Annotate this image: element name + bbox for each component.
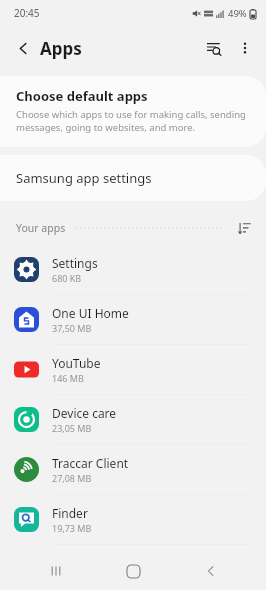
staticText: 23,05 MB [52,422,92,434]
staticText: 37,50 MB [52,322,92,334]
staticText: 146 MB [52,372,84,384]
staticText: Your apps [16,221,66,235]
staticText: Traccar Client [52,455,129,471]
button[interactable]: Device care [0,395,266,444]
button[interactable]: Home [111,552,155,590]
button[interactable]: Back [6,31,40,65]
button[interactable]: One UI Home [0,295,266,344]
staticText: Device care [52,405,117,421]
button[interactable]: Recent apps [34,552,78,590]
button[interactable]: Back [189,552,233,590]
staticText: YouTube [52,355,101,371]
staticText: 680 KB [52,272,82,284]
button[interactable]: YouTube [0,345,266,394]
staticText: Finder [52,505,88,521]
staticText: Choose which apps to use for making call… [16,108,248,134]
button[interactable]: More options [230,33,260,63]
button[interactable]: Traccar Client [0,445,266,494]
button[interactable]: Sort [232,216,256,240]
button[interactable]: Settings [0,245,266,294]
staticText: Choose default apps [16,87,148,105]
staticText: 27,08 MB [52,472,92,484]
staticText: Settings [52,255,98,271]
staticText: 49% [228,7,247,20]
button[interactable]: Search [198,32,230,64]
button[interactable]: Choose default apps [0,76,266,147]
staticText: One UI Home [52,305,129,321]
button[interactable]: Finder [0,495,266,544]
staticText: Samsung app settings [16,169,152,187]
staticText: Apps [40,37,82,60]
staticText: 20:45 [14,6,40,20]
button[interactable]: Samsung app settings [0,155,266,201]
staticText: 19,73 MB [52,522,92,534]
